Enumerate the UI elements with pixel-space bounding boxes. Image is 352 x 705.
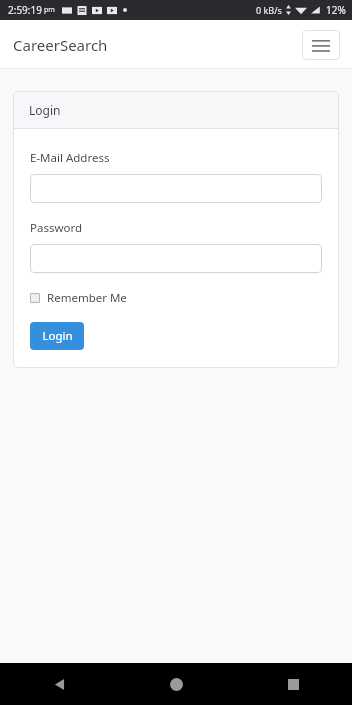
button[interactable] <box>30 244 322 273</box>
button[interactable]: Open navigation menu <box>302 30 340 60</box>
staticText: CareerSearch <box>13 35 108 55</box>
staticText: pm <box>44 5 55 15</box>
staticText: Password <box>30 220 83 236</box>
button[interactable]: Remember Me <box>30 290 127 306</box>
staticText: E-Mail Address <box>30 150 110 166</box>
staticText: 12% <box>326 3 346 17</box>
button[interactable]: Recent apps <box>235 663 352 705</box>
button[interactable]: Back <box>0 663 118 705</box>
staticText: Remember Me <box>47 290 127 306</box>
staticText: 0 kB/s <box>256 4 282 16</box>
button[interactable]: Login <box>30 322 84 350</box>
button[interactable]: Home <box>118 663 235 705</box>
staticText: Login <box>29 102 61 118</box>
button[interactable] <box>30 174 322 203</box>
staticText: Login <box>42 328 73 344</box>
staticText: 2:59:19 <box>8 3 42 17</box>
